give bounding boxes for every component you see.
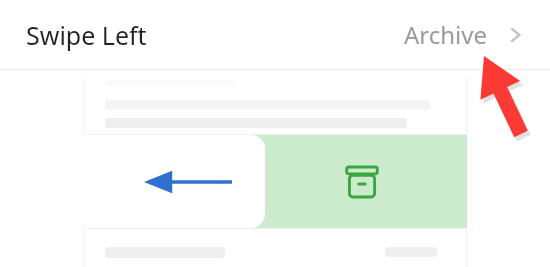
staticText: Swipe Left [26, 18, 147, 52]
button[interactable] [83, 135, 265, 228]
button[interactable]: Archive [83, 135, 467, 228]
staticText: Archive [404, 18, 488, 51]
button[interactable]: Archive [400, 14, 530, 55]
